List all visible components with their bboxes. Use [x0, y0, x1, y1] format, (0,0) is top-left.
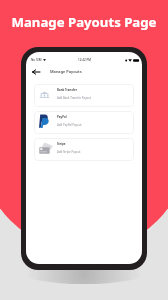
staticText: Manage Payouts Page	[0, 13, 168, 31]
staticText: Manage Payouts	[50, 69, 82, 74]
staticText: Add Bank Transfer Payout	[57, 96, 91, 100]
staticText: PayPal	[57, 115, 67, 119]
button[interactable]: Stripe	[34, 138, 134, 161]
staticText: Stripe	[57, 142, 66, 146]
button[interactable]: Bank Transfer	[34, 84, 134, 107]
staticText: Add PayPal Payout	[57, 123, 82, 127]
button[interactable]: Back	[30, 67, 41, 76]
staticText: Add Stripe Payout	[57, 150, 81, 154]
staticText: Bank Transfer	[57, 88, 78, 92]
staticText: No SIM	[31, 58, 42, 62]
button[interactable]: PayPal	[34, 111, 134, 134]
staticText: 12:42 PM	[78, 58, 92, 62]
